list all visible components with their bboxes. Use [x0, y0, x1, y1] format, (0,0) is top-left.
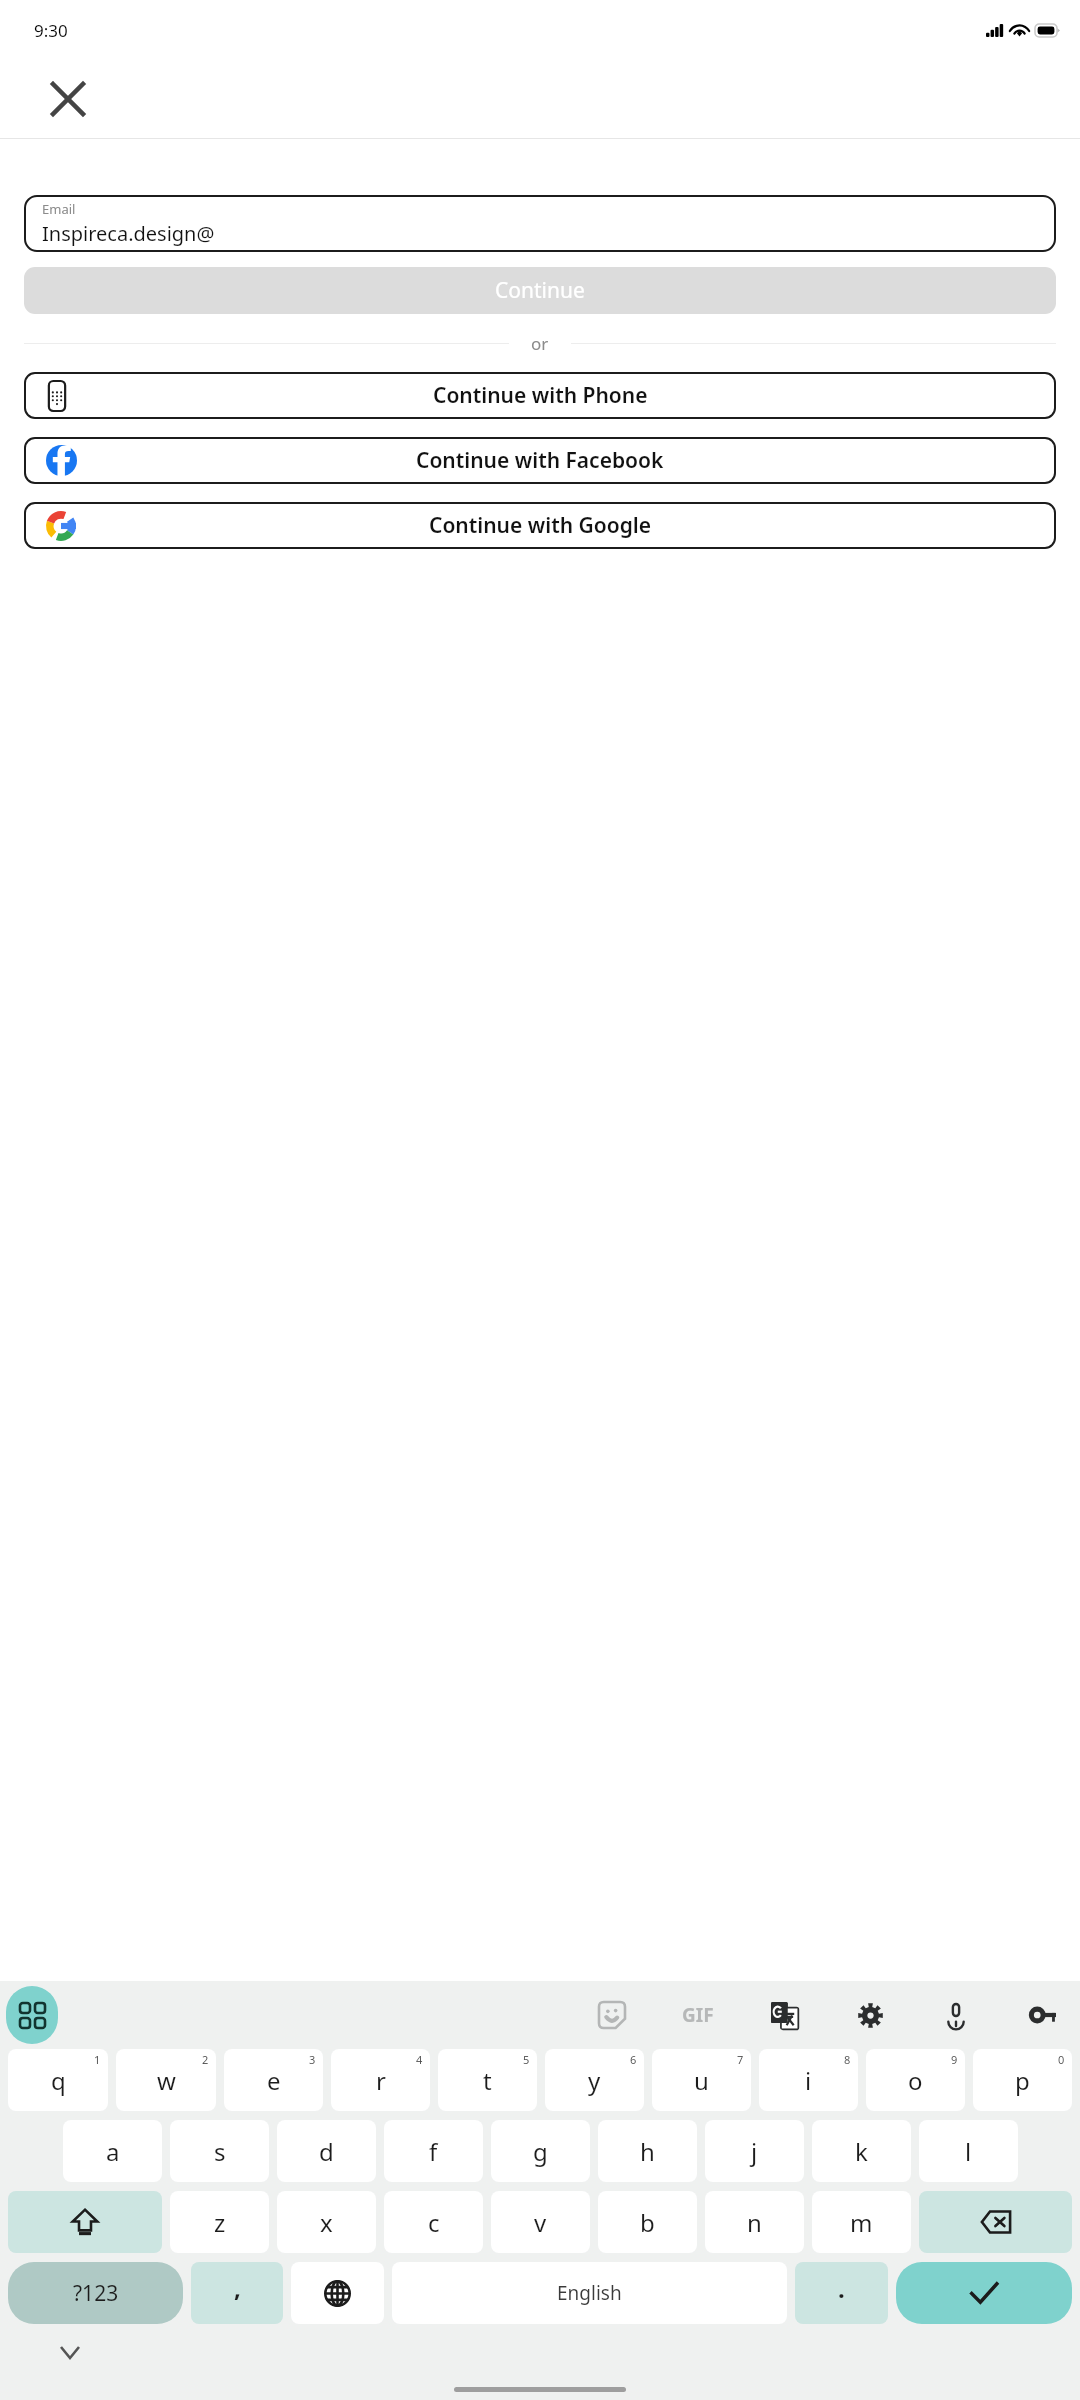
- staticText: o: [908, 2064, 923, 2097]
- button[interactable]: s: [170, 2120, 269, 2182]
- staticText: r: [376, 2064, 386, 2097]
- staticText: a: [106, 2135, 120, 2168]
- button[interactable]: z: [170, 2191, 269, 2253]
- staticText: k: [855, 2135, 868, 2168]
- button[interactable]: m: [812, 2191, 911, 2253]
- staticText: ?123: [73, 2279, 119, 2308]
- staticText: .: [838, 2272, 845, 2305]
- staticText: i: [805, 2064, 812, 2097]
- staticText: b: [640, 2206, 655, 2239]
- button[interactable]: l: [919, 2120, 1018, 2182]
- staticText: w: [157, 2064, 176, 2097]
- staticText: z: [214, 2206, 226, 2239]
- staticText: Inspireca.design@: [42, 220, 215, 247]
- button[interactable]: Comma: [191, 2262, 283, 2324]
- button[interactable]: Continue with Facebook: [24, 437, 1056, 484]
- staticText: p: [1015, 2064, 1030, 2097]
- staticText: Continue with Google: [429, 511, 652, 540]
- button[interactable]: Translate: [764, 1995, 804, 2035]
- staticText: s: [214, 2135, 226, 2168]
- staticText: q: [51, 2064, 66, 2097]
- button[interactable]: Settings: [850, 1995, 890, 2035]
- staticText: x: [320, 2206, 333, 2239]
- staticText: e: [267, 2064, 281, 2097]
- button[interactable]: ?123: [8, 2262, 183, 2324]
- staticText: j: [751, 2135, 758, 2168]
- button[interactable]: w: [116, 2049, 216, 2111]
- staticText: 2: [202, 2052, 209, 2067]
- staticText: 7: [737, 2052, 744, 2067]
- button[interactable]: Continue with Google: [24, 502, 1056, 549]
- button[interactable]: c: [384, 2191, 483, 2253]
- staticText: d: [319, 2135, 334, 2168]
- button[interactable]: Passwords: [1022, 1995, 1062, 2035]
- staticText: f: [429, 2135, 438, 2168]
- staticText: GIF: [682, 2002, 714, 2028]
- button[interactable]: Enter: [896, 2262, 1072, 2324]
- button[interactable]: Period: [795, 2262, 888, 2324]
- staticText: y: [588, 2064, 601, 2097]
- staticText: h: [640, 2135, 655, 2168]
- button[interactable]: Continue with Phone: [24, 372, 1056, 419]
- button[interactable]: Backspace: [919, 2191, 1072, 2253]
- staticText: 0: [1058, 2052, 1065, 2067]
- button[interactable]: p: [973, 2049, 1072, 2111]
- staticText: l: [965, 2135, 972, 2168]
- staticText: ,: [234, 2271, 241, 2304]
- staticText: 3: [309, 2052, 316, 2067]
- staticText: u: [694, 2064, 709, 2097]
- staticText: c: [428, 2206, 440, 2239]
- button[interactable]: Stickers: [592, 1995, 632, 2035]
- staticText: or: [531, 332, 549, 355]
- staticText: 9:30: [34, 19, 68, 42]
- button[interactable]: Toolbox: [6, 1986, 58, 2044]
- button[interactable]: x: [277, 2191, 376, 2253]
- staticText: 5: [523, 2052, 530, 2067]
- button[interactable]: k: [812, 2120, 911, 2182]
- button[interactable]: r: [331, 2049, 430, 2111]
- button[interactable]: t: [438, 2049, 537, 2111]
- button[interactable]: b: [598, 2191, 697, 2253]
- button[interactable]: Continue: [24, 267, 1056, 314]
- button[interactable]: Voice input: [936, 1995, 976, 2035]
- button[interactable]: h: [598, 2120, 697, 2182]
- staticText: Continue with Phone: [433, 381, 648, 410]
- staticText: Continue: [495, 276, 585, 305]
- button[interactable]: n: [705, 2191, 804, 2253]
- button[interactable]: i: [759, 2049, 858, 2111]
- button[interactable]: English: [392, 2262, 787, 2324]
- button[interactable]: e: [224, 2049, 323, 2111]
- button[interactable]: Shift: [8, 2191, 162, 2253]
- staticText: n: [747, 2206, 762, 2239]
- staticText: v: [534, 2206, 547, 2239]
- staticText: 6: [630, 2052, 637, 2067]
- button[interactable]: f: [384, 2120, 483, 2182]
- button[interactable]: GIF: [678, 1995, 718, 2035]
- button[interactable]: d: [277, 2120, 376, 2182]
- staticText: 4: [416, 2052, 423, 2067]
- staticText: m: [850, 2206, 873, 2239]
- button[interactable]: y: [545, 2049, 644, 2111]
- staticText: g: [533, 2135, 548, 2168]
- button[interactable]: q: [8, 2049, 108, 2111]
- button[interactable]: o: [866, 2049, 965, 2111]
- button[interactable]: Close: [42, 73, 94, 125]
- staticText: Email: [42, 200, 76, 218]
- button[interactable]: Change language: [291, 2262, 384, 2324]
- staticText: Continue with Facebook: [416, 446, 664, 475]
- staticText: 1: [94, 2052, 101, 2067]
- staticText: t: [483, 2064, 492, 2097]
- button[interactable]: Hide keyboard: [48, 2330, 92, 2374]
- staticText: 8: [844, 2052, 851, 2067]
- button[interactable]: j: [705, 2120, 804, 2182]
- button[interactable]: Email: [24, 195, 1056, 252]
- staticText: 9: [951, 2052, 958, 2067]
- button[interactable]: g: [491, 2120, 590, 2182]
- button[interactable]: u: [652, 2049, 751, 2111]
- button[interactable]: a: [63, 2120, 162, 2182]
- staticText: English: [557, 2280, 622, 2306]
- button[interactable]: v: [491, 2191, 590, 2253]
